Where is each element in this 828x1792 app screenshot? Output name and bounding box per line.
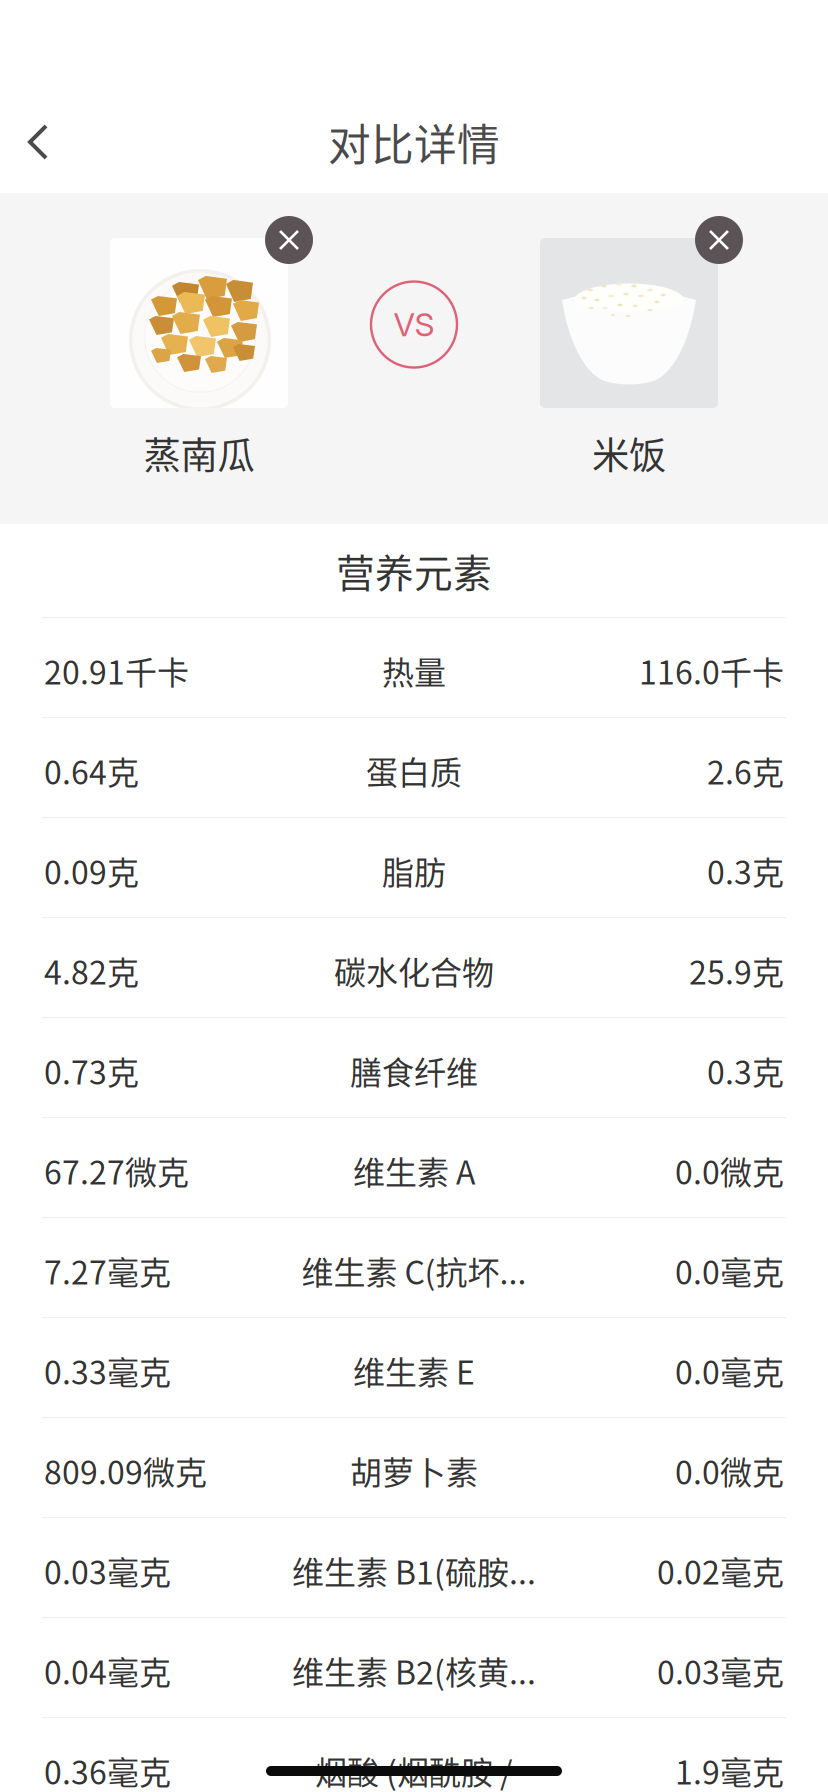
staticText: 809.09微克	[44, 1447, 207, 1494]
button[interactable]: 移除 米饭	[695, 216, 743, 264]
staticText: 膳食纤维	[350, 1047, 478, 1094]
staticText: 0.33毫克	[44, 1347, 171, 1394]
staticText: 营养元素	[336, 543, 492, 599]
staticText: 0.3克	[707, 847, 784, 894]
staticText: 蛋白质	[366, 747, 462, 794]
staticText: 0.03毫克	[44, 1547, 171, 1594]
staticText: 0.36毫克	[44, 1747, 171, 1792]
staticText: 0.04毫克	[44, 1647, 171, 1694]
staticText: 0.0微克	[675, 1147, 784, 1194]
staticText: 脂肪	[382, 847, 446, 894]
staticText: 67.27微克	[44, 1147, 189, 1194]
staticText: 维生素 C(抗坏...	[301, 1247, 526, 1294]
button[interactable]: 返回	[8, 109, 68, 175]
staticText: 1.9毫克	[675, 1747, 784, 1792]
staticText: 0.0毫克	[675, 1347, 784, 1394]
staticText: 维生素 E	[353, 1347, 475, 1394]
staticText: 20.91千卡	[44, 647, 189, 694]
staticText: 热量	[382, 647, 446, 694]
staticText: 米饭	[592, 426, 666, 480]
staticText: 0.0微克	[675, 1447, 784, 1494]
staticText: 0.0毫克	[675, 1247, 784, 1294]
button[interactable]: 移除 蒸南瓜	[265, 216, 313, 264]
staticText: 对比详情	[328, 111, 500, 173]
staticText: 0.64克	[44, 747, 139, 794]
staticText: 0.03毫克	[657, 1647, 784, 1694]
staticText: 胡萝卜素	[350, 1447, 478, 1494]
staticText: VS	[393, 305, 434, 344]
button[interactable]: 蒸南瓜	[110, 238, 288, 408]
staticText: 维生素 B1(硫胺...	[292, 1547, 536, 1594]
staticText: 4.82克	[44, 947, 139, 994]
staticText: 116.0千卡	[639, 647, 784, 694]
staticText: 0.73克	[44, 1047, 139, 1094]
button[interactable]: 米饭	[540, 238, 718, 408]
staticText: 25.9克	[689, 947, 784, 994]
staticText: 烟酸 (烟酰胺 /	[315, 1747, 513, 1792]
staticText: 7.27毫克	[44, 1247, 171, 1294]
staticText: 维生素 A	[353, 1147, 475, 1194]
staticText: 2.6克	[707, 747, 784, 794]
staticText: 碳水化合物	[334, 947, 494, 994]
staticText: 0.09克	[44, 847, 139, 894]
staticText: 蒸南瓜	[143, 426, 254, 480]
staticText: 维生素 B2(核黄...	[292, 1647, 536, 1694]
staticText: 0.02毫克	[657, 1547, 784, 1594]
staticText: 0.3克	[707, 1047, 784, 1094]
